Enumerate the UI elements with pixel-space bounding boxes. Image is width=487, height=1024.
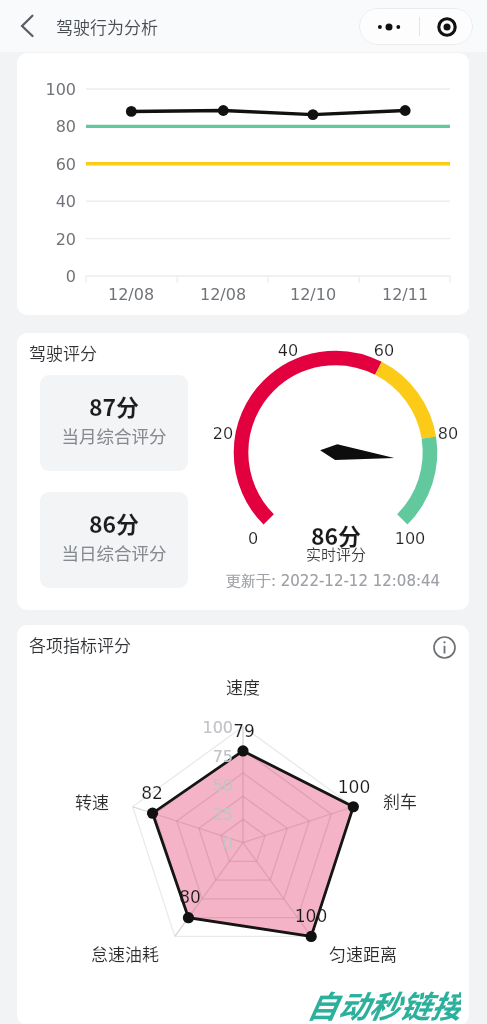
staticText: 25	[183, 805, 233, 824]
staticText: 80	[169, 887, 211, 907]
staticText: 100	[329, 777, 379, 797]
staticText: 86分	[288, 518, 384, 548]
staticText: 更新于: 2022-12-12 12:08:44	[208, 572, 458, 591]
staticText: 75	[183, 747, 233, 766]
button[interactable]: Back	[0, 0, 53, 52]
staticText: 刹车	[360, 788, 440, 810]
staticText: 60	[24, 155, 76, 174]
staticText: 当日综合评分	[40, 540, 188, 565]
staticText: 各项指标评分	[29, 632, 131, 657]
staticText: 86分	[40, 506, 188, 539]
staticText: 80	[428, 424, 468, 443]
staticText: 50	[183, 776, 233, 795]
staticText: 87分	[40, 389, 188, 422]
staticText: 实时评分	[288, 543, 384, 563]
staticText: 80	[24, 117, 76, 136]
staticText: 40	[24, 192, 76, 211]
staticText: 12/08	[188, 285, 258, 304]
staticText: 79	[223, 721, 265, 741]
staticText: 0	[233, 529, 273, 548]
staticText: 速度	[203, 674, 283, 696]
staticText: 12/10	[278, 285, 348, 304]
button[interactable]: 86分	[40, 492, 188, 588]
staticText: 当月综合评分	[40, 423, 188, 448]
staticText: 20	[24, 230, 76, 249]
staticText: 100	[183, 718, 233, 737]
staticText: 0	[24, 267, 76, 286]
staticText: 匀速距离	[315, 941, 411, 963]
staticText: 自动秒链接	[306, 982, 461, 1024]
staticText: 转速	[52, 789, 132, 811]
staticText: 12/08	[96, 285, 166, 304]
staticText: 20	[203, 424, 243, 443]
staticText: 0	[183, 834, 233, 853]
staticText: 驾驶评分	[29, 340, 97, 365]
button[interactable]: 87分	[40, 375, 188, 471]
button[interactable]: Close mini program	[420, 8, 473, 45]
button[interactable]: Info	[432, 635, 456, 659]
staticText: 驾驶行为分析	[56, 14, 158, 39]
staticText: 40	[268, 341, 308, 360]
staticText: 怠速油耗	[77, 941, 173, 963]
staticText: 100	[24, 80, 76, 99]
staticText: 12/11	[370, 285, 440, 304]
staticText: 60	[364, 341, 404, 360]
button[interactable]: More options	[359, 8, 419, 45]
staticText: 82	[131, 783, 173, 803]
staticText: 100	[286, 906, 336, 926]
staticText: 100	[386, 529, 434, 548]
